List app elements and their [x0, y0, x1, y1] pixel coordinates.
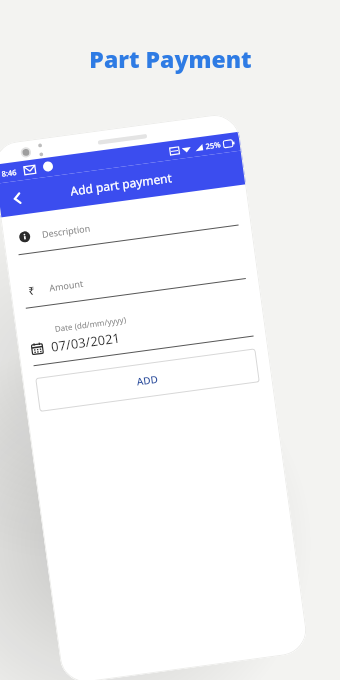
staticText: 8:46 [1, 167, 17, 179]
staticText: Part Payment [89, 43, 252, 74]
button[interactable]: ADD [35, 348, 260, 412]
staticText: 25% [205, 139, 221, 151]
staticText: Date (dd/mm/yyyy) [54, 313, 127, 334]
button[interactable]: Description [15, 200, 239, 255]
button[interactable]: Date (dd/mm/yyyy) [28, 297, 254, 366]
staticText: Description [41, 221, 91, 240]
staticText: Add part payment [69, 169, 174, 199]
button[interactable]: ₹ [22, 253, 246, 309]
staticText: ₹ [27, 282, 36, 298]
button[interactable]: Back [0, 181, 34, 215]
staticText: Amount [48, 277, 84, 293]
staticText: ADD [136, 372, 159, 389]
staticText: 07/03/2021 [50, 328, 122, 356]
